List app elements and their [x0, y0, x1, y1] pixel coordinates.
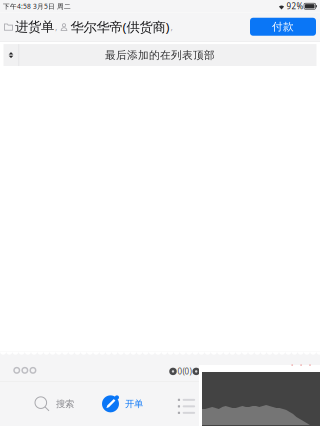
button[interactable]: 进货单 — [4, 15, 54, 39]
staticText: 下午4:58 — [3, 2, 31, 11]
staticText: 搜索 — [56, 398, 74, 410]
staticText: 华尔华帝(供货商) — [70, 18, 169, 36]
staticText: 0(0) — [178, 366, 192, 377]
button[interactable]: 开单 — [102, 387, 143, 420]
staticText: , — [170, 21, 173, 33]
staticText: , — [55, 21, 58, 33]
staticText: 开单 — [125, 398, 143, 410]
staticText: 92% — [286, 1, 303, 11]
staticText: 付款 — [272, 20, 294, 33]
button[interactable]: 搜索 — [34, 388, 74, 420]
button[interactable]: 排序 — [3, 44, 18, 66]
button[interactable]: 列表 — [171, 391, 202, 421]
staticText: 3月5日 周二 — [33, 2, 71, 11]
button[interactable]: 付款 — [250, 18, 316, 36]
button[interactable]: 华尔华帝(供货商) — [60, 14, 169, 40]
staticText: 最后添加的在列表顶部 — [105, 48, 215, 62]
staticText: 进货单 — [15, 19, 54, 35]
